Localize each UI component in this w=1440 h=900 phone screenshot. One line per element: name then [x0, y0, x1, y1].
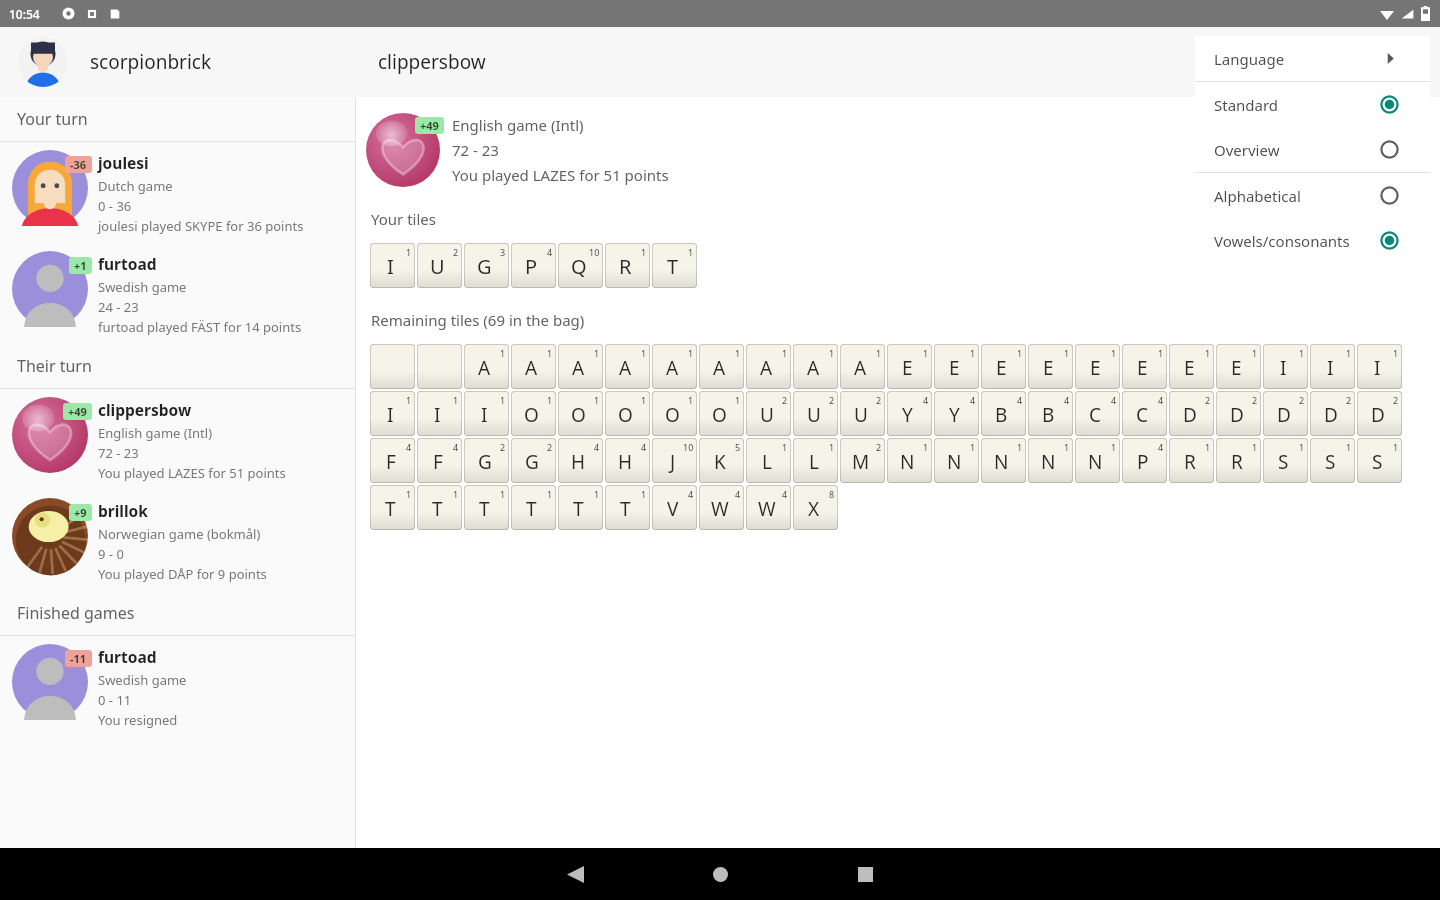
- button[interactable]: F: [370, 438, 415, 483]
- button[interactable]: I: [370, 243, 415, 288]
- button[interactable]: T: [417, 485, 462, 530]
- button[interactable]: S: [1263, 438, 1308, 483]
- button[interactable]: T: [652, 243, 697, 288]
- button[interactable]: Standard: [1195, 82, 1430, 127]
- button[interactable]: N: [981, 438, 1026, 483]
- button[interactable]: O: [511, 391, 556, 436]
- button[interactable]: Q: [558, 243, 603, 288]
- button[interactable]: U: [840, 391, 885, 436]
- button[interactable]: T: [464, 485, 509, 530]
- button[interactable]: Back: [552, 851, 598, 897]
- button[interactable]: W: [699, 485, 744, 530]
- button[interactable]: D: [1216, 391, 1261, 436]
- button[interactable]: R: [1216, 438, 1261, 483]
- button[interactable]: S: [1357, 438, 1402, 483]
- button[interactable]: O: [699, 391, 744, 436]
- button[interactable]: J: [652, 438, 697, 483]
- button[interactable]: X: [793, 485, 838, 530]
- button[interactable]: I: [1357, 344, 1402, 389]
- button[interactable]: A: [605, 344, 650, 389]
- button[interactable]: A: [464, 344, 509, 389]
- button[interactable]: Profile: [18, 37, 68, 87]
- button[interactable]: T: [558, 485, 603, 530]
- button[interactable]: A: [746, 344, 791, 389]
- button[interactable]: N: [1075, 438, 1120, 483]
- button[interactable]: Alphabetical: [1195, 173, 1430, 218]
- button[interactable]: A: [511, 344, 556, 389]
- button[interactable]: +9: [0, 490, 355, 591]
- button[interactable]: O: [558, 391, 603, 436]
- button[interactable]: E: [934, 344, 979, 389]
- button[interactable]: K: [699, 438, 744, 483]
- button[interactable]: I: [1310, 344, 1355, 389]
- button[interactable]: D: [1263, 391, 1308, 436]
- button[interactable]: Recent apps: [842, 851, 888, 897]
- button[interactable]: B: [1028, 391, 1073, 436]
- button[interactable]: S: [1310, 438, 1355, 483]
- button[interactable]: Language: [1195, 36, 1430, 81]
- button[interactable]: More options: [1386, 38, 1434, 86]
- button[interactable]: N: [934, 438, 979, 483]
- button[interactable]: E: [887, 344, 932, 389]
- staticText: scorpionbrick: [90, 49, 212, 75]
- button[interactable]: Y: [887, 391, 932, 436]
- button[interactable]: T: [605, 485, 650, 530]
- button[interactable]: T: [370, 485, 415, 530]
- button[interactable]: D: [1357, 391, 1402, 436]
- button[interactable]: C: [1122, 391, 1167, 436]
- button[interactable]: D: [1169, 391, 1214, 436]
- button[interactable]: P: [511, 243, 556, 288]
- button[interactable]: F: [417, 438, 462, 483]
- button[interactable]: Home: [697, 851, 743, 897]
- button[interactable]: W: [746, 485, 791, 530]
- button[interactable]: L: [793, 438, 838, 483]
- button[interactable]: P: [1122, 438, 1167, 483]
- button[interactable]: +1: [0, 243, 355, 344]
- button[interactable]: G: [464, 438, 509, 483]
- button[interactable]: E: [1122, 344, 1167, 389]
- button[interactable]: +49: [366, 113, 1440, 187]
- button[interactable]: I: [464, 391, 509, 436]
- button[interactable]: C: [1075, 391, 1120, 436]
- button[interactable]: -11: [0, 636, 355, 737]
- button[interactable]: T: [511, 485, 556, 530]
- button[interactable]: +49: [0, 389, 355, 490]
- button[interactable]: A: [652, 344, 697, 389]
- button[interactable]: A: [840, 344, 885, 389]
- button[interactable]: E: [1075, 344, 1120, 389]
- button[interactable]: [417, 344, 462, 389]
- button[interactable]: E: [1216, 344, 1261, 389]
- button[interactable]: I: [1263, 344, 1308, 389]
- button[interactable]: B: [981, 391, 1026, 436]
- button[interactable]: V: [652, 485, 697, 530]
- button[interactable]: L: [746, 438, 791, 483]
- button[interactable]: U: [746, 391, 791, 436]
- button[interactable]: H: [605, 438, 650, 483]
- button[interactable]: Vowels/consonants: [1195, 218, 1430, 263]
- button[interactable]: N: [1028, 438, 1073, 483]
- button[interactable]: R: [605, 243, 650, 288]
- button[interactable]: E: [1028, 344, 1073, 389]
- button[interactable]: G: [464, 243, 509, 288]
- button[interactable]: A: [699, 344, 744, 389]
- button[interactable]: R: [1169, 438, 1214, 483]
- button[interactable]: A: [558, 344, 603, 389]
- button[interactable]: U: [417, 243, 462, 288]
- button[interactable]: -36: [0, 142, 355, 243]
- button[interactable]: O: [652, 391, 697, 436]
- button[interactable]: H: [558, 438, 603, 483]
- button[interactable]: [370, 344, 415, 389]
- button[interactable]: I: [417, 391, 462, 436]
- button[interactable]: N: [887, 438, 932, 483]
- button[interactable]: E: [981, 344, 1026, 389]
- button[interactable]: D: [1310, 391, 1355, 436]
- button[interactable]: A: [793, 344, 838, 389]
- button[interactable]: E: [1169, 344, 1214, 389]
- button[interactable]: O: [605, 391, 650, 436]
- button[interactable]: M: [840, 438, 885, 483]
- button[interactable]: Y: [934, 391, 979, 436]
- button[interactable]: G: [511, 438, 556, 483]
- button[interactable]: U: [793, 391, 838, 436]
- button[interactable]: Overview: [1195, 127, 1430, 172]
- button[interactable]: I: [370, 391, 415, 436]
